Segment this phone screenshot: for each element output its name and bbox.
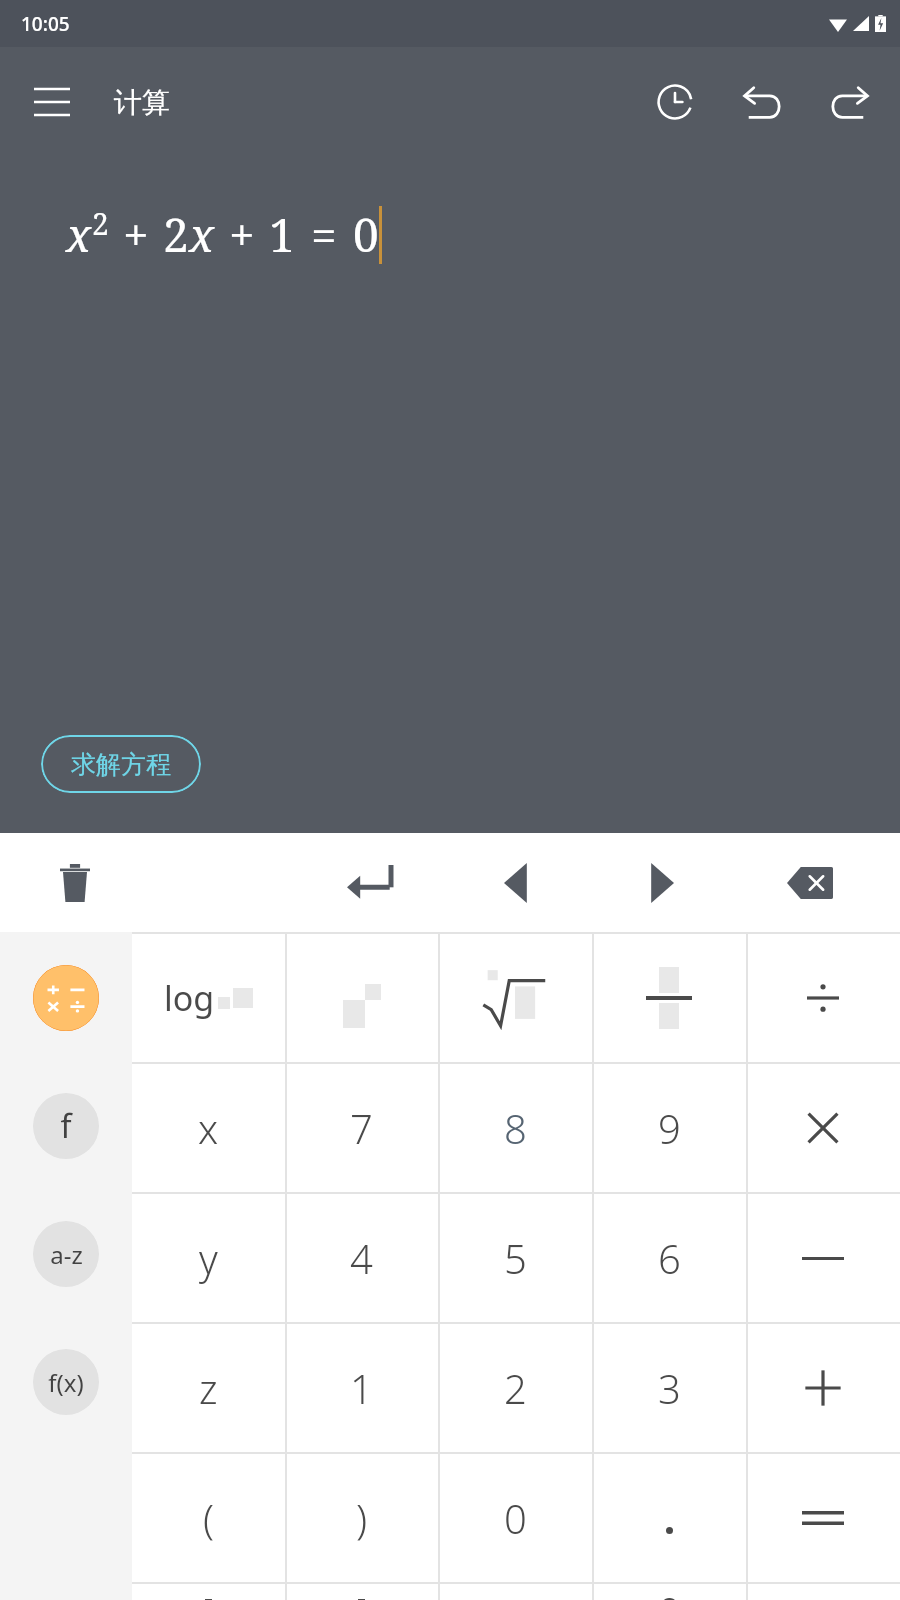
button[interactable]: Letters xyxy=(0,1190,132,1318)
staticText: + xyxy=(229,203,255,266)
button[interactable]: Move right xyxy=(631,852,693,914)
button[interactable]: 4 xyxy=(285,1194,438,1322)
button[interactable] xyxy=(746,1454,900,1582)
button[interactable] xyxy=(132,1584,285,1600)
staticText: f xyxy=(60,1104,72,1148)
staticText: 7 xyxy=(350,1101,373,1155)
staticText: + xyxy=(123,203,149,266)
staticText: x xyxy=(66,203,92,266)
staticText: ( xyxy=(203,1491,215,1545)
staticText: 1 xyxy=(269,203,295,266)
button[interactable]: 0 xyxy=(592,1584,746,1600)
staticText: y xyxy=(199,1231,218,1285)
button[interactable]: Enter xyxy=(338,852,400,914)
button[interactable]: Move left xyxy=(485,852,547,914)
staticText: 0 xyxy=(658,1584,681,1600)
staticText: a-z xyxy=(50,1238,83,1271)
button[interactable]: Operators xyxy=(0,934,132,1062)
staticText: 6 xyxy=(658,1231,681,1285)
button[interactable] xyxy=(746,1064,900,1192)
button[interactable] xyxy=(438,934,592,1062)
button[interactable]: ) xyxy=(285,1454,438,1582)
button[interactable]: 6 xyxy=(592,1194,746,1322)
staticText: 求解方程 xyxy=(71,749,171,780)
button[interactable]: log xyxy=(132,934,285,1062)
button[interactable]: Function f(x) xyxy=(0,1318,132,1446)
button[interactable]: y xyxy=(132,1194,285,1322)
button[interactable] xyxy=(746,1324,900,1452)
staticText: 2 xyxy=(163,203,189,266)
staticText: 9 xyxy=(658,1101,681,1155)
button[interactable]: 求解方程 xyxy=(41,735,201,793)
staticText: f(x) xyxy=(48,1366,84,1399)
button[interactable] xyxy=(285,934,438,1062)
staticText: 0 xyxy=(353,203,379,266)
button[interactable] xyxy=(592,1454,746,1582)
button[interactable]: 1 xyxy=(285,1324,438,1452)
staticText: x xyxy=(189,203,215,266)
button[interactable] xyxy=(746,1194,900,1322)
button[interactable]: 0 xyxy=(438,1454,592,1582)
button[interactable]: 8 xyxy=(438,1064,592,1192)
button[interactable]: Backspace xyxy=(779,852,841,914)
button[interactable]: 2 xyxy=(438,1324,592,1452)
button[interactable]: Functions xyxy=(0,1062,132,1190)
button[interactable]: History xyxy=(644,71,706,133)
button[interactable]: Menu xyxy=(22,72,82,132)
button[interactable]: Redo xyxy=(818,71,880,133)
button[interactable] xyxy=(746,934,900,1062)
staticText: 计算 xyxy=(114,85,170,120)
button[interactable]: ( xyxy=(132,1454,285,1582)
staticText: = xyxy=(311,203,337,266)
staticText: z xyxy=(199,1361,218,1415)
button[interactable]: x xyxy=(132,1064,285,1192)
button[interactable]: 9 xyxy=(592,1064,746,1192)
button[interactable]: Clear xyxy=(44,852,106,914)
button[interactable]: 7 xyxy=(285,1064,438,1192)
staticText: 2 xyxy=(504,1361,527,1415)
button[interactable] xyxy=(438,1584,592,1600)
staticText: 10:05 xyxy=(21,11,70,37)
button[interactable] xyxy=(285,1584,438,1600)
staticText: 4 xyxy=(350,1231,373,1285)
button[interactable]: Undo xyxy=(732,71,794,133)
staticText: x xyxy=(198,1101,219,1155)
staticText: 1 xyxy=(350,1361,373,1415)
staticText: log xyxy=(164,975,215,1021)
staticText: 0 xyxy=(504,1491,527,1545)
staticText: 2 xyxy=(92,203,109,244)
button[interactable] xyxy=(746,1584,900,1600)
staticText: ) xyxy=(356,1491,368,1545)
button[interactable]: z xyxy=(132,1324,285,1452)
button[interactable]: 5 xyxy=(438,1194,592,1322)
button[interactable] xyxy=(592,934,746,1062)
staticText: 5 xyxy=(504,1231,527,1285)
staticText: 3 xyxy=(658,1361,681,1415)
button[interactable]: 3 xyxy=(592,1324,746,1452)
staticText: 8 xyxy=(504,1101,527,1155)
